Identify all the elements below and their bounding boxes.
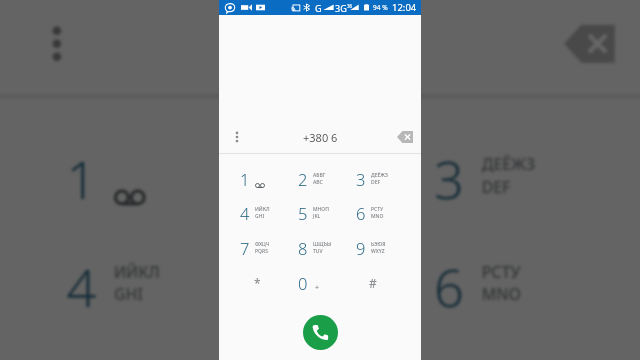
staticText: 3 (356, 168, 366, 190)
staticText: PQRS (255, 248, 268, 255)
button[interactable]: 2 (212, 123, 396, 231)
staticText: 4 (240, 202, 250, 224)
button[interactable]: * (228, 265, 286, 300)
button[interactable]: 4 (28, 231, 212, 338)
staticText: + (315, 283, 320, 293)
staticText: TUV (313, 248, 323, 255)
button[interactable]: 7 (228, 230, 286, 265)
button[interactable]: Backspace (394, 128, 416, 146)
staticText: G (315, 2, 322, 14)
button[interactable]: More options (228, 128, 246, 146)
button[interactable]: 9 (344, 230, 402, 265)
staticText: JKL (313, 213, 321, 220)
button[interactable]: 5 (212, 231, 396, 338)
staticText: 2 (298, 168, 308, 190)
staticText: 6 (356, 202, 366, 224)
staticText: JKL (298, 285, 323, 307)
staticText: АБВГ (298, 155, 339, 177)
button[interactable]: 8 (286, 230, 344, 265)
button[interactable]: 5 (286, 196, 344, 230)
button[interactable]: Backspace (555, 15, 624, 72)
staticText: МНОП (313, 206, 329, 213)
staticText: 9 (356, 237, 366, 259)
staticText: 36 (347, 3, 353, 9)
button[interactable]: 9 (396, 338, 580, 360)
staticText: ИЙКЛ (114, 262, 161, 285)
staticText: 0 (298, 272, 308, 294)
staticText: MNO (482, 285, 523, 307)
staticText: РСТУ (482, 262, 523, 285)
staticText: DEF (482, 177, 513, 199)
staticText: ДЕЁЖЗ (482, 155, 536, 177)
staticText: ABC (298, 177, 329, 199)
staticText: ЬЭЮЯ (371, 241, 386, 248)
staticText: MNO (371, 213, 384, 220)
staticText: 1 (240, 168, 250, 190)
staticText: # (369, 275, 377, 291)
staticText: GHI (114, 285, 146, 307)
staticText: МНОП (298, 262, 348, 285)
staticText: GHI (255, 213, 265, 220)
staticText: АБВГ (313, 172, 326, 179)
staticText: ИЙКЛ (255, 206, 270, 213)
staticText: РСТУ (371, 206, 384, 213)
staticText: 1 (66, 142, 98, 212)
staticText: 5 (298, 202, 308, 224)
staticText: 5 (250, 250, 282, 319)
staticText: ДЕЁЖЗ (371, 172, 388, 179)
button[interactable]: 3 (396, 123, 580, 231)
staticText: DEF (371, 179, 381, 186)
button[interactable]: 2 (286, 162, 344, 196)
staticText: 3 (434, 142, 466, 212)
staticText: ABC (313, 179, 323, 186)
button[interactable]: 6 (396, 231, 580, 338)
staticText: 3G (335, 2, 347, 14)
staticText: 6 (434, 250, 466, 319)
staticText: * (254, 275, 261, 291)
staticText: ФХЦЧ (255, 241, 270, 248)
button[interactable]: 0 (286, 265, 344, 300)
staticText: ШЩЪЫ (313, 241, 332, 248)
button[interactable]: More options (28, 15, 85, 72)
staticText: 4 (66, 250, 98, 319)
staticText: 94 % (373, 3, 388, 12)
staticText: 7 (240, 237, 250, 259)
button[interactable]: 8 (212, 338, 396, 360)
staticText: 12:04 (392, 1, 417, 14)
button[interactable]: # (344, 265, 402, 300)
button[interactable]: 3 (344, 162, 402, 196)
button[interactable]: 1 (28, 123, 212, 231)
staticText: WXYZ (371, 248, 385, 255)
button[interactable]: 1 (228, 162, 286, 196)
staticText: +380 6 (303, 130, 338, 145)
button[interactable]: Call (303, 315, 338, 350)
staticText: 8 (298, 237, 308, 259)
button[interactable]: 6 (344, 196, 402, 230)
button[interactable]: 4 (228, 196, 286, 230)
staticText: 2 (250, 142, 282, 212)
